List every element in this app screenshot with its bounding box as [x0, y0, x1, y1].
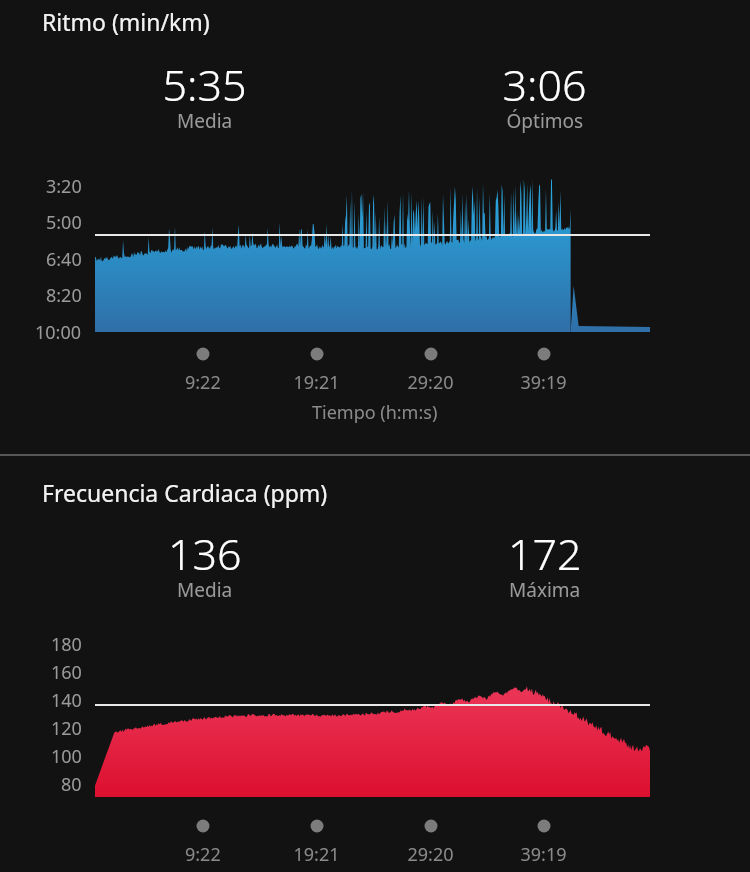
button[interactable]: Gráficos de ritmo y frecuencia cardiaca — [0, 0, 750, 872]
